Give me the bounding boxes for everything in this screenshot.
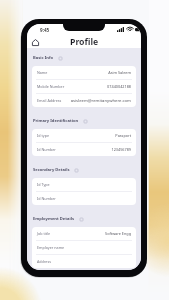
staticText: Name xyxy=(37,70,48,75)
button[interactable]: Edit Primary Identification xyxy=(82,118,88,124)
staticText: Asim Saleem xyxy=(108,70,131,75)
staticText: Passport xyxy=(115,133,131,138)
button[interactable]: Id type xyxy=(32,129,136,142)
staticText: Software Engg xyxy=(105,231,131,236)
button[interactable]: Home xyxy=(29,36,41,48)
button[interactable]: Id Number xyxy=(32,192,136,205)
button[interactable]: Name xyxy=(32,66,136,79)
staticText: Secondary Details xyxy=(33,167,70,173)
button[interactable]: Id Type xyxy=(32,178,136,191)
button[interactable]: Edit Basic Info xyxy=(57,55,63,61)
staticText: Address xyxy=(37,259,51,264)
staticText: 9:45 xyxy=(40,27,50,33)
staticText: Employer name xyxy=(37,245,65,250)
staticText: Id Type xyxy=(37,182,50,187)
staticText: asisleem@remitanywhere.com xyxy=(70,98,131,104)
staticText: 123456789 xyxy=(111,147,131,152)
button[interactable]: Job title xyxy=(32,227,136,240)
staticText: Id type xyxy=(37,133,50,138)
button[interactable]: Employer name xyxy=(32,241,136,254)
staticText: Id Number xyxy=(37,196,56,201)
button[interactable]: Edit Secondary Details xyxy=(73,167,79,173)
staticText: Basic Info xyxy=(33,55,54,61)
staticText: Job title xyxy=(37,231,51,236)
staticText: Primary Identification xyxy=(33,118,79,124)
button[interactable]: Edit Employment Details xyxy=(78,216,84,222)
staticText: Mobile Number xyxy=(37,84,65,89)
button[interactable]: Email Address xyxy=(32,94,136,107)
button[interactable]: Mobile Number xyxy=(32,80,136,93)
staticText: Id Number xyxy=(37,147,56,152)
staticText: 07440042188 xyxy=(107,84,131,89)
staticText: Email Address xyxy=(37,98,62,103)
button[interactable]: Id Number xyxy=(32,143,136,156)
staticText: Profile xyxy=(70,36,99,48)
staticText: Employment Details xyxy=(33,216,75,222)
button[interactable]: Address xyxy=(32,255,136,268)
